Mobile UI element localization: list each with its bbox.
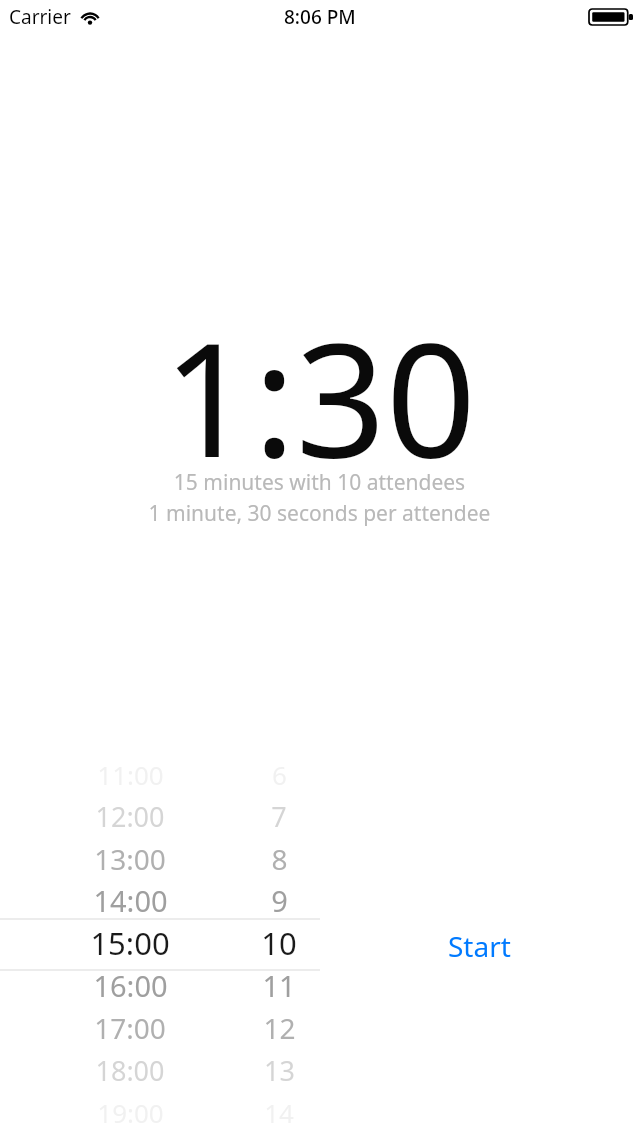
staticText: 14 [264, 1095, 294, 1130]
button[interactable]: Duration and attendee picker [0, 795, 320, 1136]
staticText: 1 minute, 30 seconds per attendee [0, 499, 639, 528]
staticText: 13 [264, 1052, 295, 1089]
staticText: 9 [271, 881, 288, 920]
staticText: 11:00 [97, 757, 164, 792]
staticText: 12 [263, 1009, 296, 1047]
staticText: 11 [262, 966, 296, 1005]
staticText: 18:00 [95, 1052, 165, 1089]
staticText: 15:00 [90, 922, 170, 964]
staticText: Carrier [9, 4, 71, 30]
staticText: 19:00 [97, 1095, 164, 1130]
staticText: 13:00 [94, 840, 166, 878]
staticText: 7 [271, 798, 287, 835]
button[interactable]: Start [400, 918, 558, 974]
staticText: 1:30 [0, 288, 639, 503]
staticText: Start [448, 927, 511, 965]
staticText: 8:06 PM [284, 4, 356, 30]
staticText: 14:00 [93, 881, 168, 920]
staticText: 16:00 [93, 966, 168, 1005]
staticText: 17:00 [94, 1009, 166, 1047]
staticText: 8 [271, 840, 288, 878]
staticText: 12:00 [95, 798, 165, 835]
staticText: 10 [261, 922, 297, 964]
staticText: 15 minutes with 10 attendees [0, 468, 639, 497]
staticText: 6 [272, 757, 287, 792]
